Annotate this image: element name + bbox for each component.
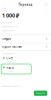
staticText: ✕ bbox=[45, 3, 47, 6]
button[interactable]: Карта bbox=[1, 64, 31, 74]
staticText: Перевод без комиссии bbox=[2, 85, 20, 87]
button[interactable]: Перевод bbox=[0, 3, 51, 6]
staticText: Счёт bbox=[6, 56, 12, 60]
staticText: Сумма bbox=[2, 10, 7, 12]
button[interactable]: Куда и сколько bbox=[0, 43, 51, 51]
staticText: Лимит 150 000 ₽ bbox=[2, 30, 14, 32]
staticText: Способ оплаты bbox=[2, 53, 14, 55]
staticText: Куда и сколько bbox=[2, 45, 22, 48]
staticText: Карта bbox=[6, 66, 13, 69]
staticText: Деньги придут сразу bbox=[2, 26, 19, 28]
staticText: Комиссия 0 ₽ bbox=[2, 22, 12, 24]
staticText: 1 000 ₽ bbox=[6, 61, 11, 63]
staticText: Куда bbox=[2, 7, 6, 9]
button[interactable]: Счёт bbox=[1, 56, 31, 63]
button[interactable]: Откуда bbox=[0, 35, 51, 43]
staticText: Перевод bbox=[18, 3, 32, 6]
staticText: Откуда bbox=[2, 37, 10, 41]
staticText: Перевести bbox=[36, 92, 45, 94]
button[interactable]: Перевести bbox=[34, 91, 47, 96]
staticText: 1 000 ₽ bbox=[2, 12, 19, 19]
staticText: •• 1234 bbox=[6, 70, 12, 72]
button[interactable]: Close bbox=[44, 3, 48, 6]
